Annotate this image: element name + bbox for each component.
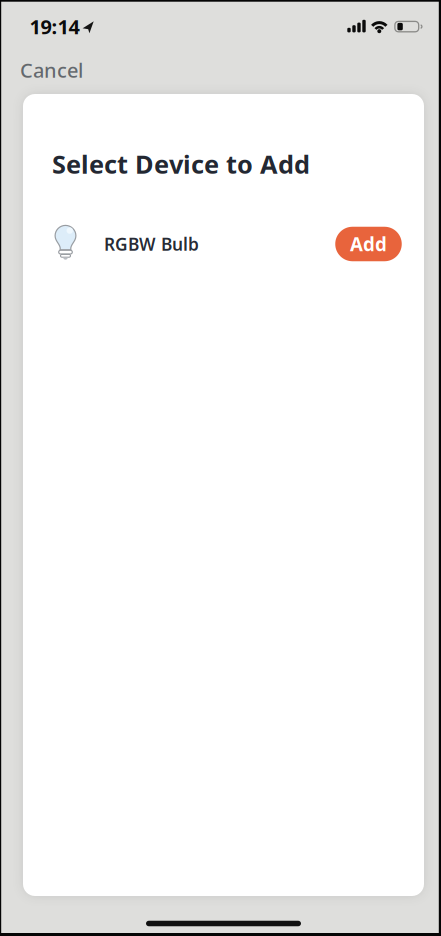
staticText: Select Device to Add xyxy=(52,147,310,181)
staticText: 19:14 xyxy=(29,13,79,40)
staticText: Cancel xyxy=(20,57,83,83)
button[interactable]: Add xyxy=(335,227,402,261)
button[interactable]: Cancel xyxy=(20,55,110,85)
staticText: RGBW Bulb xyxy=(104,232,199,255)
staticText: Add xyxy=(350,232,387,256)
